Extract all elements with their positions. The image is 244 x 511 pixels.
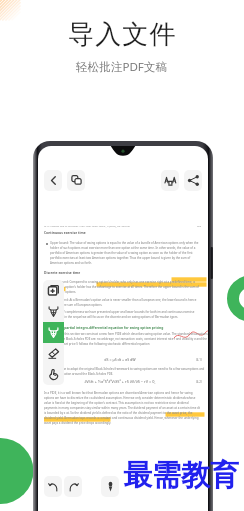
staticText: Continuous exercise time xyxy=(44,230,86,234)
button[interactable]: Add note xyxy=(43,280,64,301)
staticText: ∂V/∂t + ½σ²S²∂²V/∂S² + rS ∂V/∂S − rV = 0… xyxy=(44,379,196,384)
staticText: In order of completeness we have present… xyxy=(50,310,202,319)
staticText: 最需教育 xyxy=(123,457,239,494)
button[interactable]: Pages xyxy=(67,170,85,191)
staticText: 导入文件 xyxy=(68,18,177,51)
staticText: due to adapt the original Black-Scholes … xyxy=(61,367,208,376)
button[interactable]: Hand xyxy=(43,364,64,385)
staticText: M. H. Nguyen and M. Ehrhardt / Adv. Appl… xyxy=(44,224,131,227)
staticText: Lower bound: Compared to a swing option'… xyxy=(50,280,202,294)
button[interactable]: Pen xyxy=(101,476,119,497)
staticText: Upper bound: The value of owing options … xyxy=(50,241,202,265)
staticText: Discrete exercise time xyxy=(44,270,81,274)
staticText: dS = µS dt + σS dW xyxy=(44,357,196,362)
staticText: 轻松批注PDF文稿 xyxy=(76,59,168,75)
button[interactable]: Undo xyxy=(44,476,62,497)
staticText: Lower bound: At a Bermudan's option valu… xyxy=(50,298,202,307)
staticText: (4.1) xyxy=(196,358,202,362)
button[interactable]: Share xyxy=(184,170,202,191)
button[interactable]: Pen xyxy=(43,301,64,322)
staticText: In this section we construct a new form … xyxy=(61,332,208,346)
button[interactable]: Text settings xyxy=(161,170,179,191)
staticText: (4.2) xyxy=(196,380,202,384)
staticText: In a PIDE, it is a well known fact that … xyxy=(44,391,202,425)
button[interactable]: Highlighter xyxy=(43,322,64,343)
button[interactable]: Back xyxy=(44,170,62,191)
staticText: 269 xyxy=(197,224,202,227)
button[interactable]: Eraser xyxy=(43,343,64,364)
staticText: A partial integro-differential equation … xyxy=(61,325,164,329)
button[interactable]: Redo xyxy=(64,476,82,497)
